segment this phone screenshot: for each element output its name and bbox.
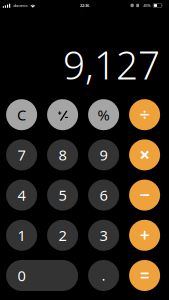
button[interactable]: 7: [6, 139, 37, 170]
button[interactable]: 8: [47, 139, 78, 170]
button[interactable]: Decimal point: [88, 260, 119, 291]
button[interactable]: Multiply: [129, 139, 160, 170]
button[interactable]: 2: [47, 220, 78, 251]
button[interactable]: C: [6, 99, 37, 130]
button[interactable]: 1: [6, 220, 37, 251]
staticText: 2: [59, 226, 67, 245]
staticText: 8: [59, 145, 67, 165]
staticText: 22:36: [80, 3, 89, 8]
staticText: 45%: [143, 3, 150, 8]
button[interactable]: Divide: [129, 99, 160, 130]
staticText: 7: [18, 145, 26, 165]
staticText: 4: [18, 185, 26, 205]
button[interactable]: 5: [47, 180, 78, 211]
button[interactable]: 6: [88, 180, 119, 211]
button[interactable]: Plus minus: [47, 99, 78, 130]
button[interactable]: %: [88, 99, 119, 130]
button[interactable]: 3: [88, 220, 119, 251]
button[interactable]: 4: [6, 180, 37, 211]
button[interactable]: 9: [88, 139, 119, 170]
staticText: docomo: [13, 3, 27, 8]
staticText: 9: [100, 145, 108, 165]
staticText: C: [17, 105, 26, 124]
button[interactable]: Add: [129, 220, 160, 251]
staticText: 3: [100, 226, 108, 245]
staticText: 5: [59, 185, 67, 205]
button[interactable]: Equals: [129, 260, 160, 291]
staticText: 0: [18, 266, 26, 285]
button[interactable]: 0: [6, 260, 78, 291]
staticText: 9,127: [63, 39, 160, 90]
button[interactable]: Subtract: [129, 180, 160, 211]
staticText: 1: [18, 226, 26, 245]
staticText: 6: [100, 185, 108, 205]
staticText: %: [98, 105, 110, 124]
